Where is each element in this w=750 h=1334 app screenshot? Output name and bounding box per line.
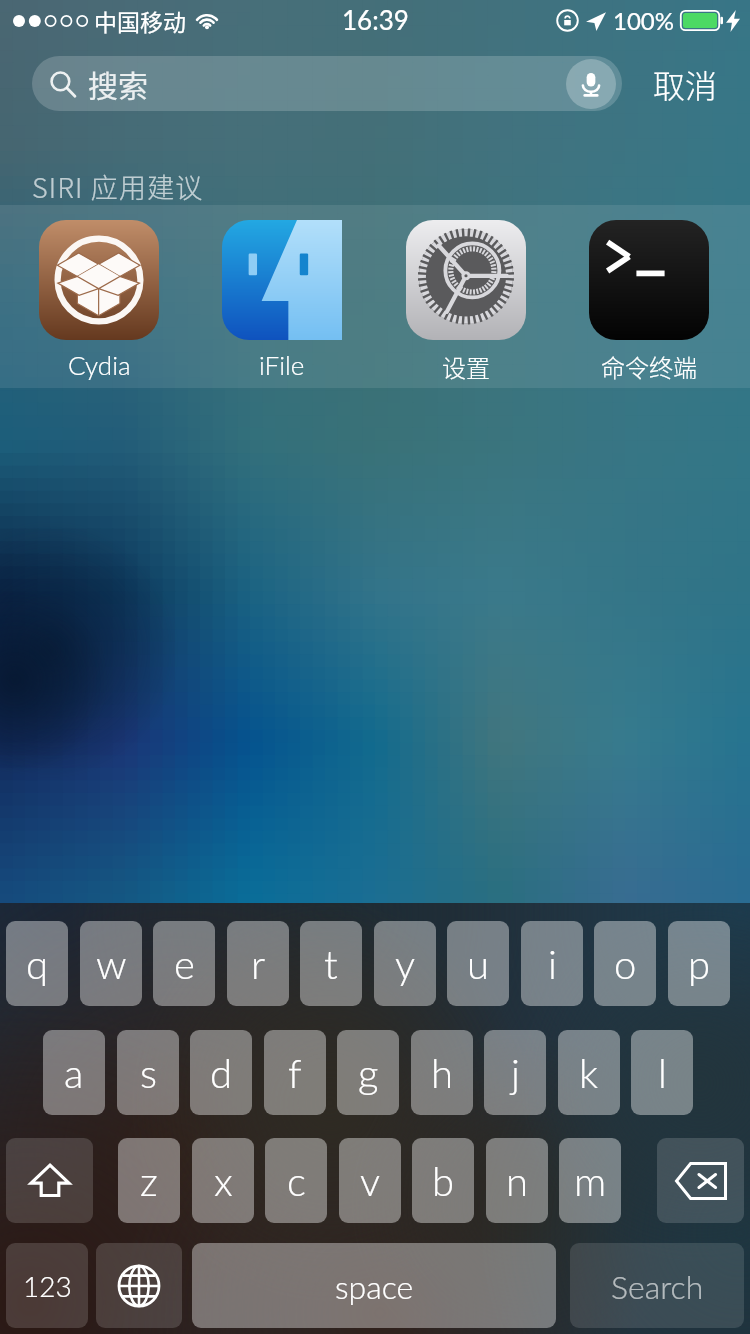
button[interactable]: Backspace — [657, 1138, 744, 1223]
staticText: 命令终端 — [601, 349, 697, 384]
staticText: Cydia — [68, 349, 131, 380]
button[interactable]: q — [6, 921, 68, 1006]
staticText: m — [574, 1157, 607, 1205]
button[interactable]: j — [484, 1030, 546, 1115]
staticText: k — [579, 1049, 599, 1097]
button[interactable]: space — [192, 1243, 556, 1328]
staticText: y — [395, 940, 416, 988]
staticText: 16:39 — [342, 4, 409, 35]
staticText: l — [658, 1049, 667, 1097]
button[interactable]: v — [339, 1138, 401, 1223]
staticText: 123 — [23, 1269, 72, 1303]
button[interactable]: b — [412, 1138, 474, 1223]
staticText: Search — [611, 1267, 704, 1305]
button[interactable]: r — [227, 921, 289, 1006]
button[interactable]: 命令终端 — [559, 205, 739, 388]
button[interactable]: Cydia — [9, 205, 189, 388]
staticText: r — [251, 940, 266, 988]
staticText: 中国移动 — [94, 4, 186, 37]
button[interactable]: iFile — [192, 205, 372, 388]
button[interactable]: e — [153, 921, 215, 1006]
staticText: i — [548, 940, 557, 988]
staticText: space — [335, 1267, 414, 1305]
button[interactable]: m — [559, 1138, 621, 1223]
button[interactable]: 123 — [6, 1243, 88, 1328]
button[interactable]: Voice search — [566, 59, 616, 109]
button[interactable]: p — [668, 921, 730, 1006]
button[interactable]: Change keyboard — [96, 1243, 182, 1328]
button[interactable]: 搜索 — [32, 56, 622, 111]
button[interactable]: Search — [570, 1243, 744, 1328]
staticText: SIRI 应用建议 — [32, 167, 204, 206]
staticText: 取消 — [653, 61, 718, 107]
button[interactable]: d — [190, 1030, 252, 1115]
button[interactable]: s — [117, 1030, 179, 1115]
staticText: g — [358, 1049, 379, 1097]
staticText: e — [174, 940, 195, 988]
button[interactable]: 设置 — [376, 205, 556, 388]
staticText: o — [614, 940, 637, 988]
button[interactable]: f — [264, 1030, 326, 1115]
staticText: f — [288, 1049, 302, 1097]
button[interactable]: z — [118, 1138, 180, 1223]
staticText: s — [140, 1049, 157, 1097]
button[interactable]: t — [300, 921, 362, 1006]
staticText: z — [140, 1157, 158, 1205]
staticText: v — [360, 1157, 381, 1205]
button[interactable]: a — [43, 1030, 105, 1115]
button[interactable]: o — [594, 921, 656, 1006]
button[interactable]: y — [374, 921, 436, 1006]
button[interactable]: x — [192, 1138, 254, 1223]
button[interactable]: g — [337, 1030, 399, 1115]
button[interactable]: w — [80, 921, 142, 1006]
button[interactable]: c — [265, 1138, 327, 1223]
staticText: c — [287, 1157, 306, 1205]
staticText: iFile — [259, 349, 305, 380]
button[interactable]: i — [521, 921, 583, 1006]
staticText: a — [64, 1049, 84, 1097]
staticText: n — [506, 1157, 528, 1205]
staticText: 搜索 — [88, 62, 148, 105]
staticText: p — [688, 940, 711, 988]
staticText: x — [214, 1157, 233, 1205]
staticText: d — [210, 1049, 233, 1097]
button[interactable]: Shift — [6, 1138, 93, 1223]
staticText: t — [324, 940, 338, 988]
button[interactable]: h — [411, 1030, 473, 1115]
button[interactable]: 取消 — [640, 56, 730, 111]
button[interactable]: n — [486, 1138, 548, 1223]
staticText: 设置 — [442, 349, 490, 384]
staticText: b — [432, 1157, 455, 1205]
staticText: h — [431, 1049, 453, 1097]
button[interactable]: u — [447, 921, 509, 1006]
staticText: j — [511, 1049, 520, 1097]
staticText: 100% — [613, 6, 674, 35]
staticText: u — [467, 940, 489, 988]
staticText: q — [26, 940, 49, 988]
button[interactable]: k — [558, 1030, 620, 1115]
button[interactable]: l — [631, 1030, 693, 1115]
staticText: w — [96, 940, 127, 988]
